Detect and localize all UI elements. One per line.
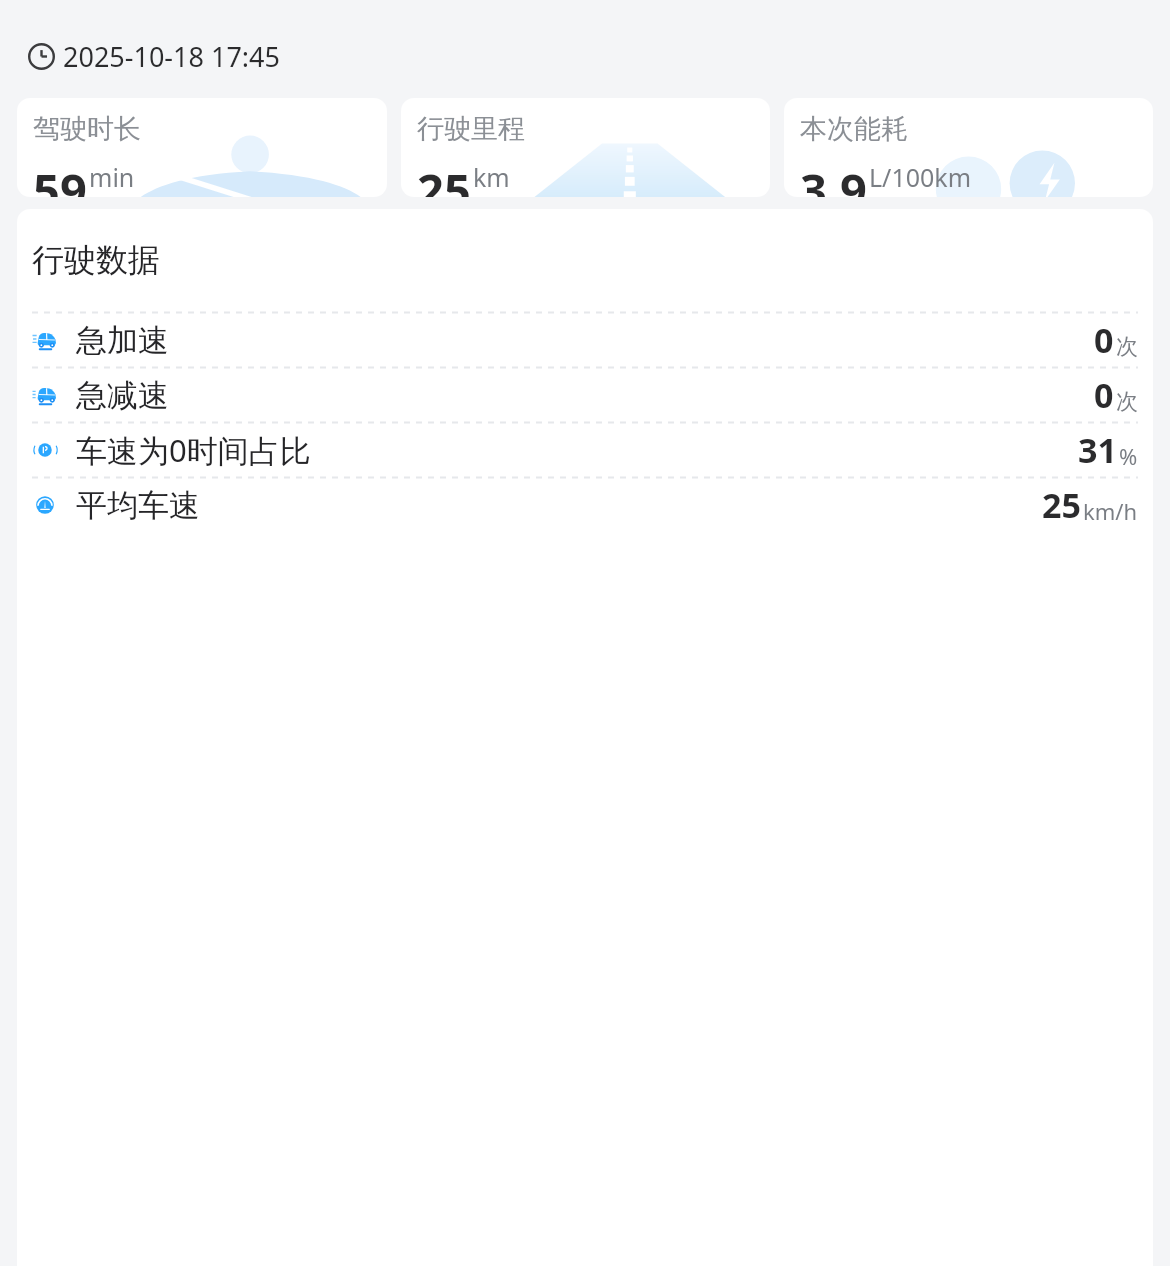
staticText: 3.9 [800, 158, 867, 197]
staticText: 急减速 [76, 376, 169, 415]
staticText: 次 [1116, 388, 1138, 416]
staticText: 59 [33, 158, 87, 197]
staticText: min [89, 160, 135, 194]
other: 急减速 [32, 382, 58, 408]
staticText: 25 [1042, 482, 1081, 528]
staticText: km [473, 160, 510, 194]
button[interactable]: 行驶里程 [401, 98, 770, 197]
staticText: 次 [1116, 333, 1138, 361]
other: 车速为0时间占比 [32, 437, 58, 463]
button[interactable]: 本次能耗 [784, 98, 1153, 197]
staticText: 2025-10-18 17:45 [63, 38, 280, 75]
button[interactable]: 2025-10-18 17:45 [26, 36, 282, 77]
staticText: L/100km [869, 160, 972, 194]
button[interactable]: 车速为0时间占比 [17, 423, 1153, 477]
staticText: 本次能耗 [800, 112, 908, 146]
staticText: 车速为0时间占比 [76, 429, 311, 471]
staticText: 行驶数据 [32, 240, 160, 280]
staticText: 0 [1094, 372, 1114, 418]
button[interactable]: 急减速 [17, 368, 1153, 422]
other: 急加速 [32, 327, 58, 353]
staticText: 驾驶时长 [33, 112, 141, 146]
staticText: % [1119, 441, 1138, 471]
button[interactable]: 急加速 [17, 313, 1153, 367]
button[interactable]: 驾驶时长 [17, 98, 387, 197]
staticText: 急加速 [76, 321, 169, 360]
staticText: 25 [417, 158, 471, 197]
staticText: 平均车速 [76, 486, 200, 525]
staticText: 0 [1094, 317, 1114, 363]
button[interactable]: 平均车速 [17, 478, 1153, 532]
staticText: 行驶里程 [417, 112, 525, 146]
other: 平均车速 [32, 492, 58, 518]
staticText: km/h [1083, 496, 1138, 526]
staticText: 31 [1078, 427, 1117, 473]
